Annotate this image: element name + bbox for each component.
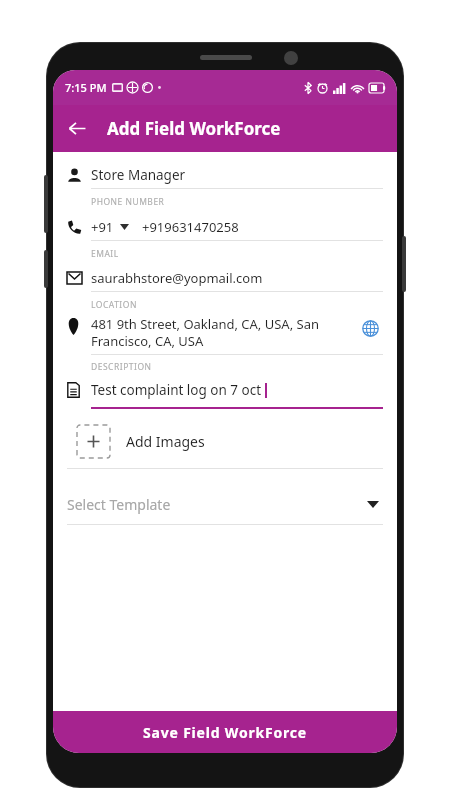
button[interactable]: Add Images bbox=[77, 425, 383, 458]
staticText: Add Field WorkForce bbox=[107, 117, 281, 140]
button[interactable]: Save Field WorkForce bbox=[53, 711, 397, 753]
staticText: +91 bbox=[91, 218, 114, 236]
button[interactable]: Select Template bbox=[67, 491, 383, 517]
staticText: +919631470258 bbox=[142, 218, 239, 236]
staticText: saurabhstore@yopmail.com bbox=[91, 269, 263, 287]
staticText: Add Images bbox=[126, 432, 205, 451]
staticText: EMAIL bbox=[91, 248, 119, 260]
staticText: DESCRIPTION bbox=[91, 361, 152, 373]
staticText: Save Field WorkForce bbox=[143, 723, 307, 742]
staticText: Store Manager bbox=[91, 166, 186, 184]
button[interactable]: Back bbox=[53, 105, 101, 152]
staticText: 7:15 PM bbox=[65, 80, 107, 95]
staticText: PHONE NUMBER bbox=[91, 196, 165, 208]
staticText: Select Template bbox=[67, 495, 367, 514]
staticText: 481 9th Street, Oakland, CA, USA, San Fr… bbox=[91, 315, 349, 350]
staticText: Test complaint log on 7 oct bbox=[91, 381, 262, 399]
button[interactable]: Pick location on map bbox=[357, 315, 383, 341]
staticText: LOCATION bbox=[91, 299, 137, 311]
